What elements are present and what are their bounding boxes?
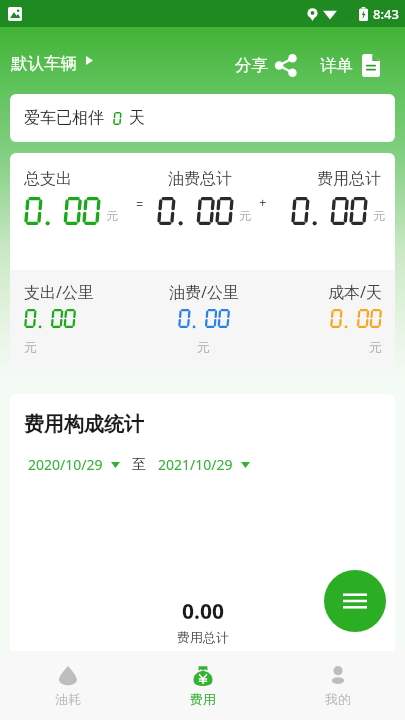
button[interactable]: Menu (324, 570, 386, 632)
staticText: 至 (132, 456, 146, 474)
staticText: 2021/10/29 (158, 455, 233, 474)
button[interactable]: 油耗 (0, 651, 135, 720)
staticText: 成本/天 (328, 281, 382, 303)
button[interactable]: 费用 (135, 651, 270, 720)
staticText: 我的 (325, 691, 351, 707)
staticText: 费用总计 (177, 629, 229, 645)
staticText: 元 (197, 339, 210, 355)
staticText: 爱车已相伴 (24, 108, 104, 128)
button[interactable]: 2020/10/29 (28, 455, 120, 474)
staticText: 天 (129, 108, 145, 128)
staticText: 费用总计 (317, 169, 381, 189)
button[interactable]: 默认车辆 (4, 49, 101, 80)
staticText: 8:43 (373, 5, 399, 23)
staticText: 2020/10/29 (28, 455, 103, 474)
staticText: 详单 (320, 55, 353, 76)
button[interactable]: 爱车已相伴 (10, 94, 395, 142)
staticText: 元 (239, 208, 251, 223)
button[interactable]: 我的 (270, 651, 405, 720)
staticText: 油耗 (55, 691, 81, 707)
staticText: + (259, 193, 267, 211)
staticText: 支出/公里 (24, 281, 94, 303)
staticText: 总支出 (24, 169, 72, 189)
staticText: 费用构成统计 (24, 412, 144, 437)
staticText: 0.00 (182, 597, 224, 626)
staticText: 分享 (235, 55, 268, 76)
staticText: 默认车辆 (11, 53, 77, 74)
staticText: 元 (373, 208, 385, 223)
staticText: 元 (24, 339, 37, 355)
staticText: 元 (369, 339, 382, 355)
staticText: = (136, 195, 144, 213)
button[interactable]: 详单 (318, 51, 382, 80)
button[interactable]: 分享 (233, 51, 299, 80)
staticText: 费用 (190, 691, 216, 707)
staticText: 油费总计 (168, 169, 232, 189)
staticText: 油费/公里 (169, 281, 239, 303)
button[interactable]: 2021/10/29 (158, 455, 250, 474)
staticText: 元 (106, 208, 118, 223)
